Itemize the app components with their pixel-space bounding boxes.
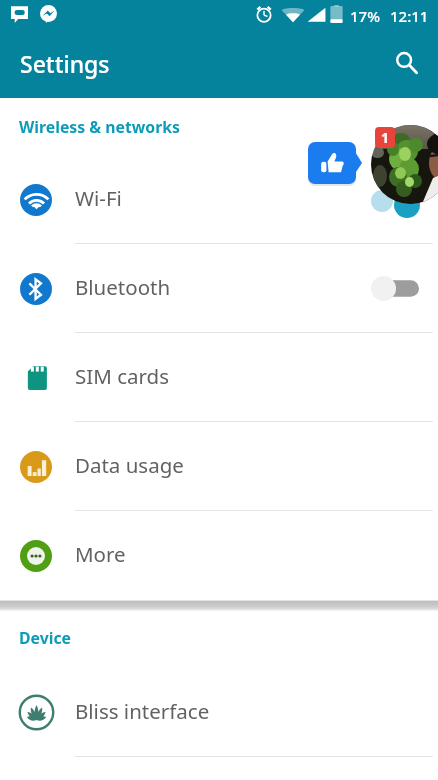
staticText: 1 [381,128,390,147]
button[interactable]: SIM cards [0,333,438,422]
staticText: Bluetooth [75,273,171,301]
staticText: Settings [20,48,110,79]
button[interactable]: Bliss interface [0,668,438,757]
staticText: Device [19,627,72,649]
button[interactable]: More [0,511,438,600]
staticText: Data usage [75,451,184,479]
staticText: SIM cards [75,362,169,390]
staticText: More [75,540,126,568]
button[interactable]: Data usage [0,422,438,511]
staticText: Wireless & networks [19,116,180,138]
button[interactable]: Bluetooth [0,244,438,333]
button[interactable]: Wi-Fi [0,155,438,244]
staticText: Wi-Fi [75,184,122,212]
button[interactable]: Search [385,41,429,85]
staticText: Bliss interface [75,697,210,725]
staticText: 17% [350,6,380,26]
staticText: 12:11 [390,6,429,26]
